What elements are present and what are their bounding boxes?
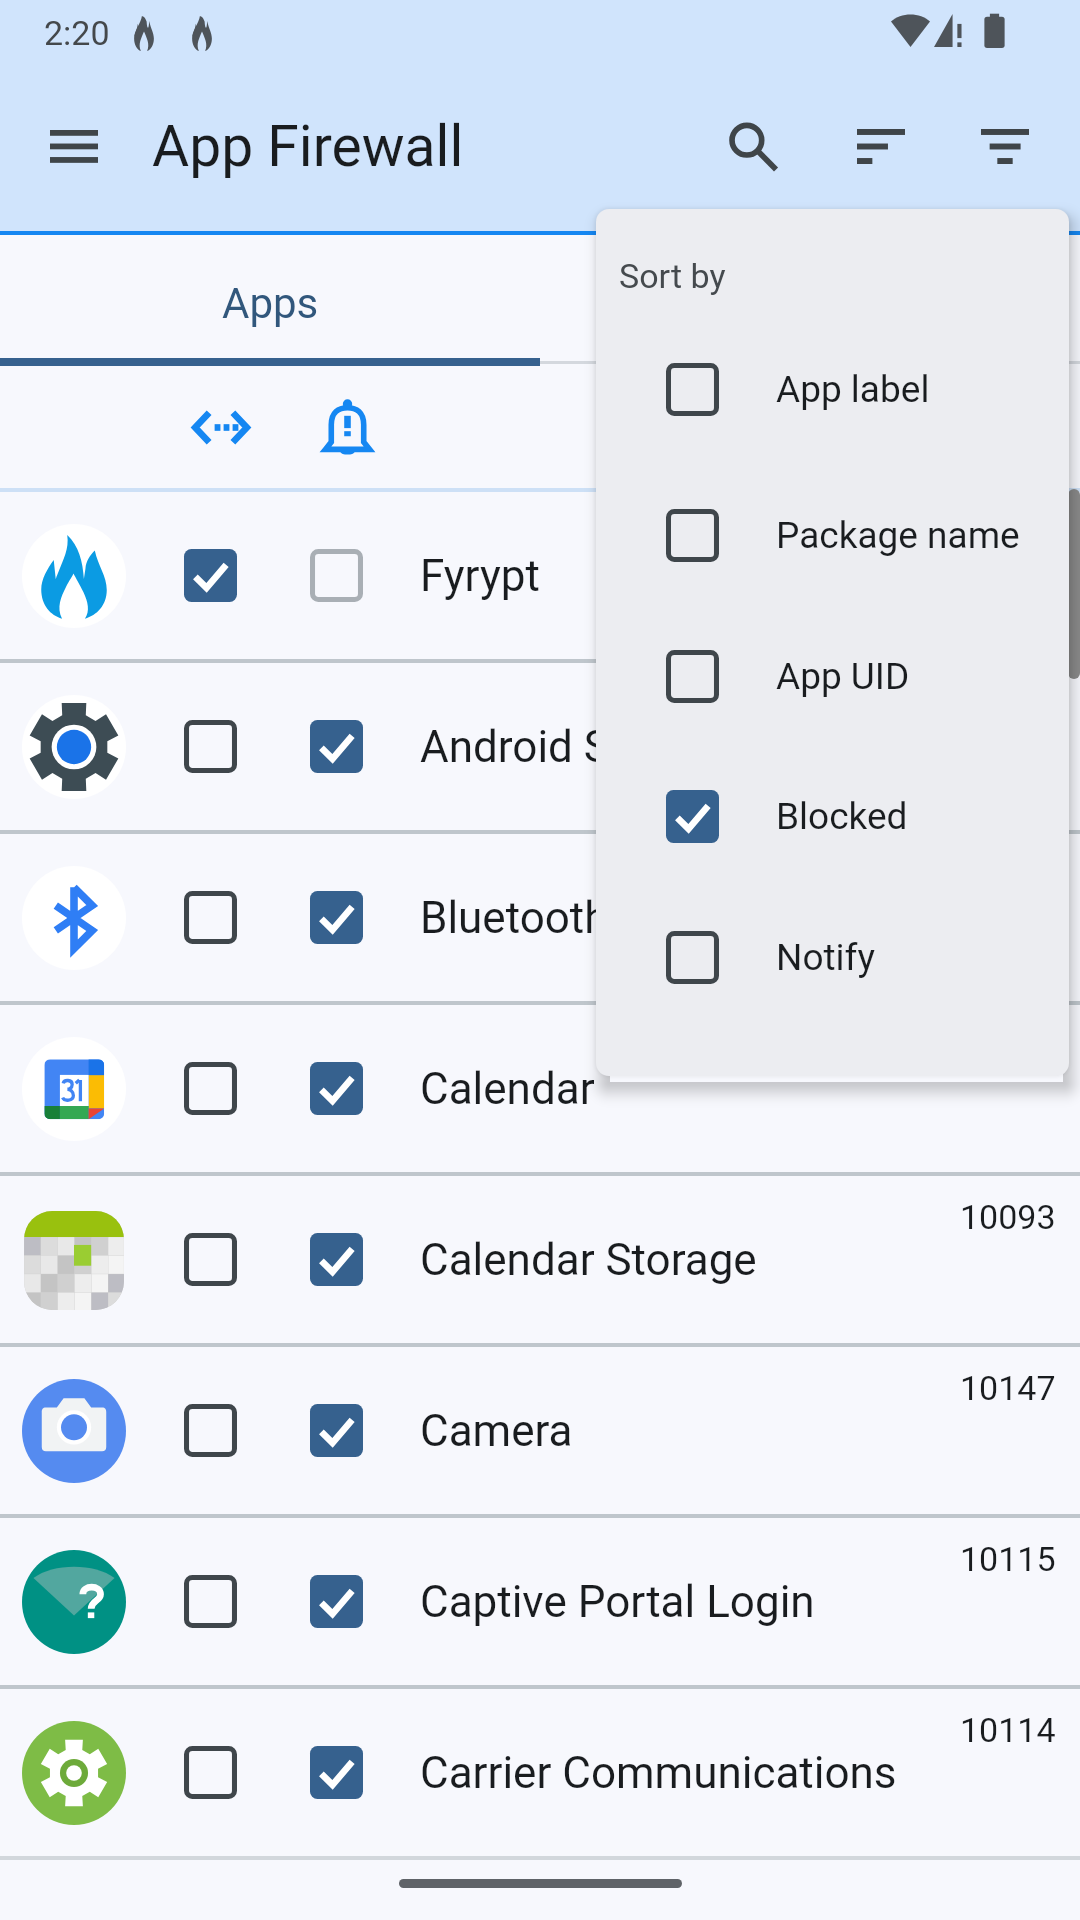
staticText: Carrier Communications [420,1747,897,1799]
button[interactable]: App label [596,339,1069,439]
staticText: Android System [420,721,730,773]
button[interactable]: App UID [596,626,1069,726]
staticText: 10115 [960,1539,1056,1579]
staticText: Bluetooth [420,892,609,944]
button[interactable]: Captive Portal Login [0,1518,1080,1685]
staticText: 10093 [960,1197,1056,1237]
staticText: Fyrypt [420,550,540,602]
button[interactable]: Calendar [0,1005,1080,1172]
staticText: Apps [222,279,319,328]
staticText: 2:20 [44,13,110,53]
staticText: Captive Portal Login [420,1576,815,1628]
staticText: Notify [776,936,875,979]
button[interactable]: Open navigation menu [26,98,122,194]
button[interactable]: Carrier Communications [0,1689,1080,1856]
staticText: 10114 [960,1710,1056,1750]
button[interactable]: Package name [596,485,1069,585]
staticText: App label [776,368,930,411]
button[interactable]: Apps [0,235,540,358]
staticText: Calendar Storage [420,1234,757,1286]
staticText: Calendar [420,1063,595,1115]
button[interactable]: Notify [596,907,1069,1007]
staticText: Blocked [776,795,908,838]
button[interactable]: Fyrypt [0,492,1080,659]
button[interactable]: Android System [0,663,1080,830]
staticText: Sort by [619,256,726,296]
staticText: App Firewall [152,113,464,180]
staticText: App UID [776,655,910,698]
button[interactable]: Calendar Storage [0,1176,1080,1343]
button[interactable]: Sort [833,98,929,194]
button[interactable]: Bluetooth [0,834,1080,1001]
button[interactable]: Search [705,98,801,194]
staticText: Camera [420,1405,573,1457]
staticText: Package name [776,514,1020,557]
staticText: 10147 [960,1368,1056,1408]
button[interactable]: Blocked [596,766,1069,866]
button[interactable]: Filter by notify [299,379,395,475]
button[interactable]: Filter by network [173,379,269,475]
button[interactable]: Camera [0,1347,1080,1514]
button[interactable]: Filter [957,98,1053,194]
